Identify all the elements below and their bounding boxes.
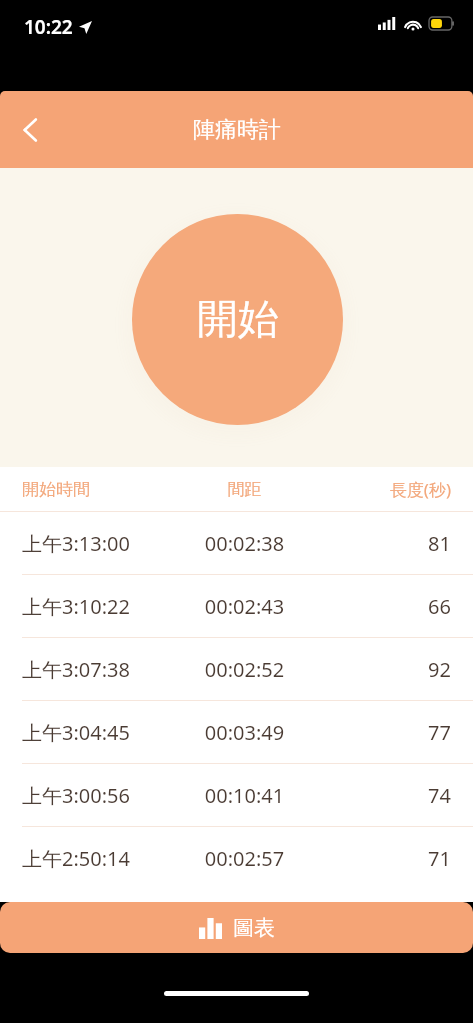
staticText: 00:02:52 bbox=[182, 656, 307, 683]
staticText: 開始時間 bbox=[22, 479, 182, 500]
staticText: 間距 bbox=[182, 479, 307, 500]
staticText: 77 bbox=[307, 719, 451, 746]
staticText: 74 bbox=[307, 782, 451, 809]
staticText: 上午3:10:22 bbox=[22, 593, 182, 620]
button[interactable]: 上午3:00:56 bbox=[0, 764, 473, 826]
staticText: 上午3:07:38 bbox=[22, 656, 182, 683]
staticText: 上午3:04:45 bbox=[22, 719, 182, 746]
staticText: 上午3:13:00 bbox=[22, 530, 182, 557]
button[interactable]: 上午3:10:22 bbox=[0, 575, 473, 637]
staticText: 00:03:49 bbox=[182, 719, 307, 746]
button[interactable]: 上午2:50:14 bbox=[0, 827, 473, 889]
staticText: 92 bbox=[307, 656, 451, 683]
staticText: 圖表 bbox=[233, 915, 275, 941]
button[interactable]: 開始 bbox=[132, 214, 343, 425]
staticText: 00:02:43 bbox=[182, 593, 307, 620]
staticText: 00:02:57 bbox=[182, 845, 307, 872]
button[interactable]: 圖表 bbox=[0, 902, 473, 953]
staticText: 陣痛時計 bbox=[193, 116, 281, 144]
staticText: 00:10:41 bbox=[182, 782, 307, 809]
staticText: 開始 bbox=[197, 294, 279, 346]
button[interactable]: Back bbox=[4, 104, 56, 156]
staticText: 長度(秒) bbox=[307, 478, 451, 501]
staticText: 10:22 bbox=[24, 14, 73, 40]
staticText: 上午2:50:14 bbox=[22, 845, 182, 872]
staticText: 上午3:00:56 bbox=[22, 782, 182, 809]
button[interactable]: 上午3:13:00 bbox=[0, 512, 473, 574]
staticText: 71 bbox=[307, 845, 451, 872]
button[interactable]: 上午3:04:45 bbox=[0, 701, 473, 763]
staticText: 81 bbox=[307, 530, 451, 557]
button[interactable]: 上午3:07:38 bbox=[0, 638, 473, 700]
staticText: 66 bbox=[307, 593, 451, 620]
staticText: 00:02:38 bbox=[182, 530, 307, 557]
